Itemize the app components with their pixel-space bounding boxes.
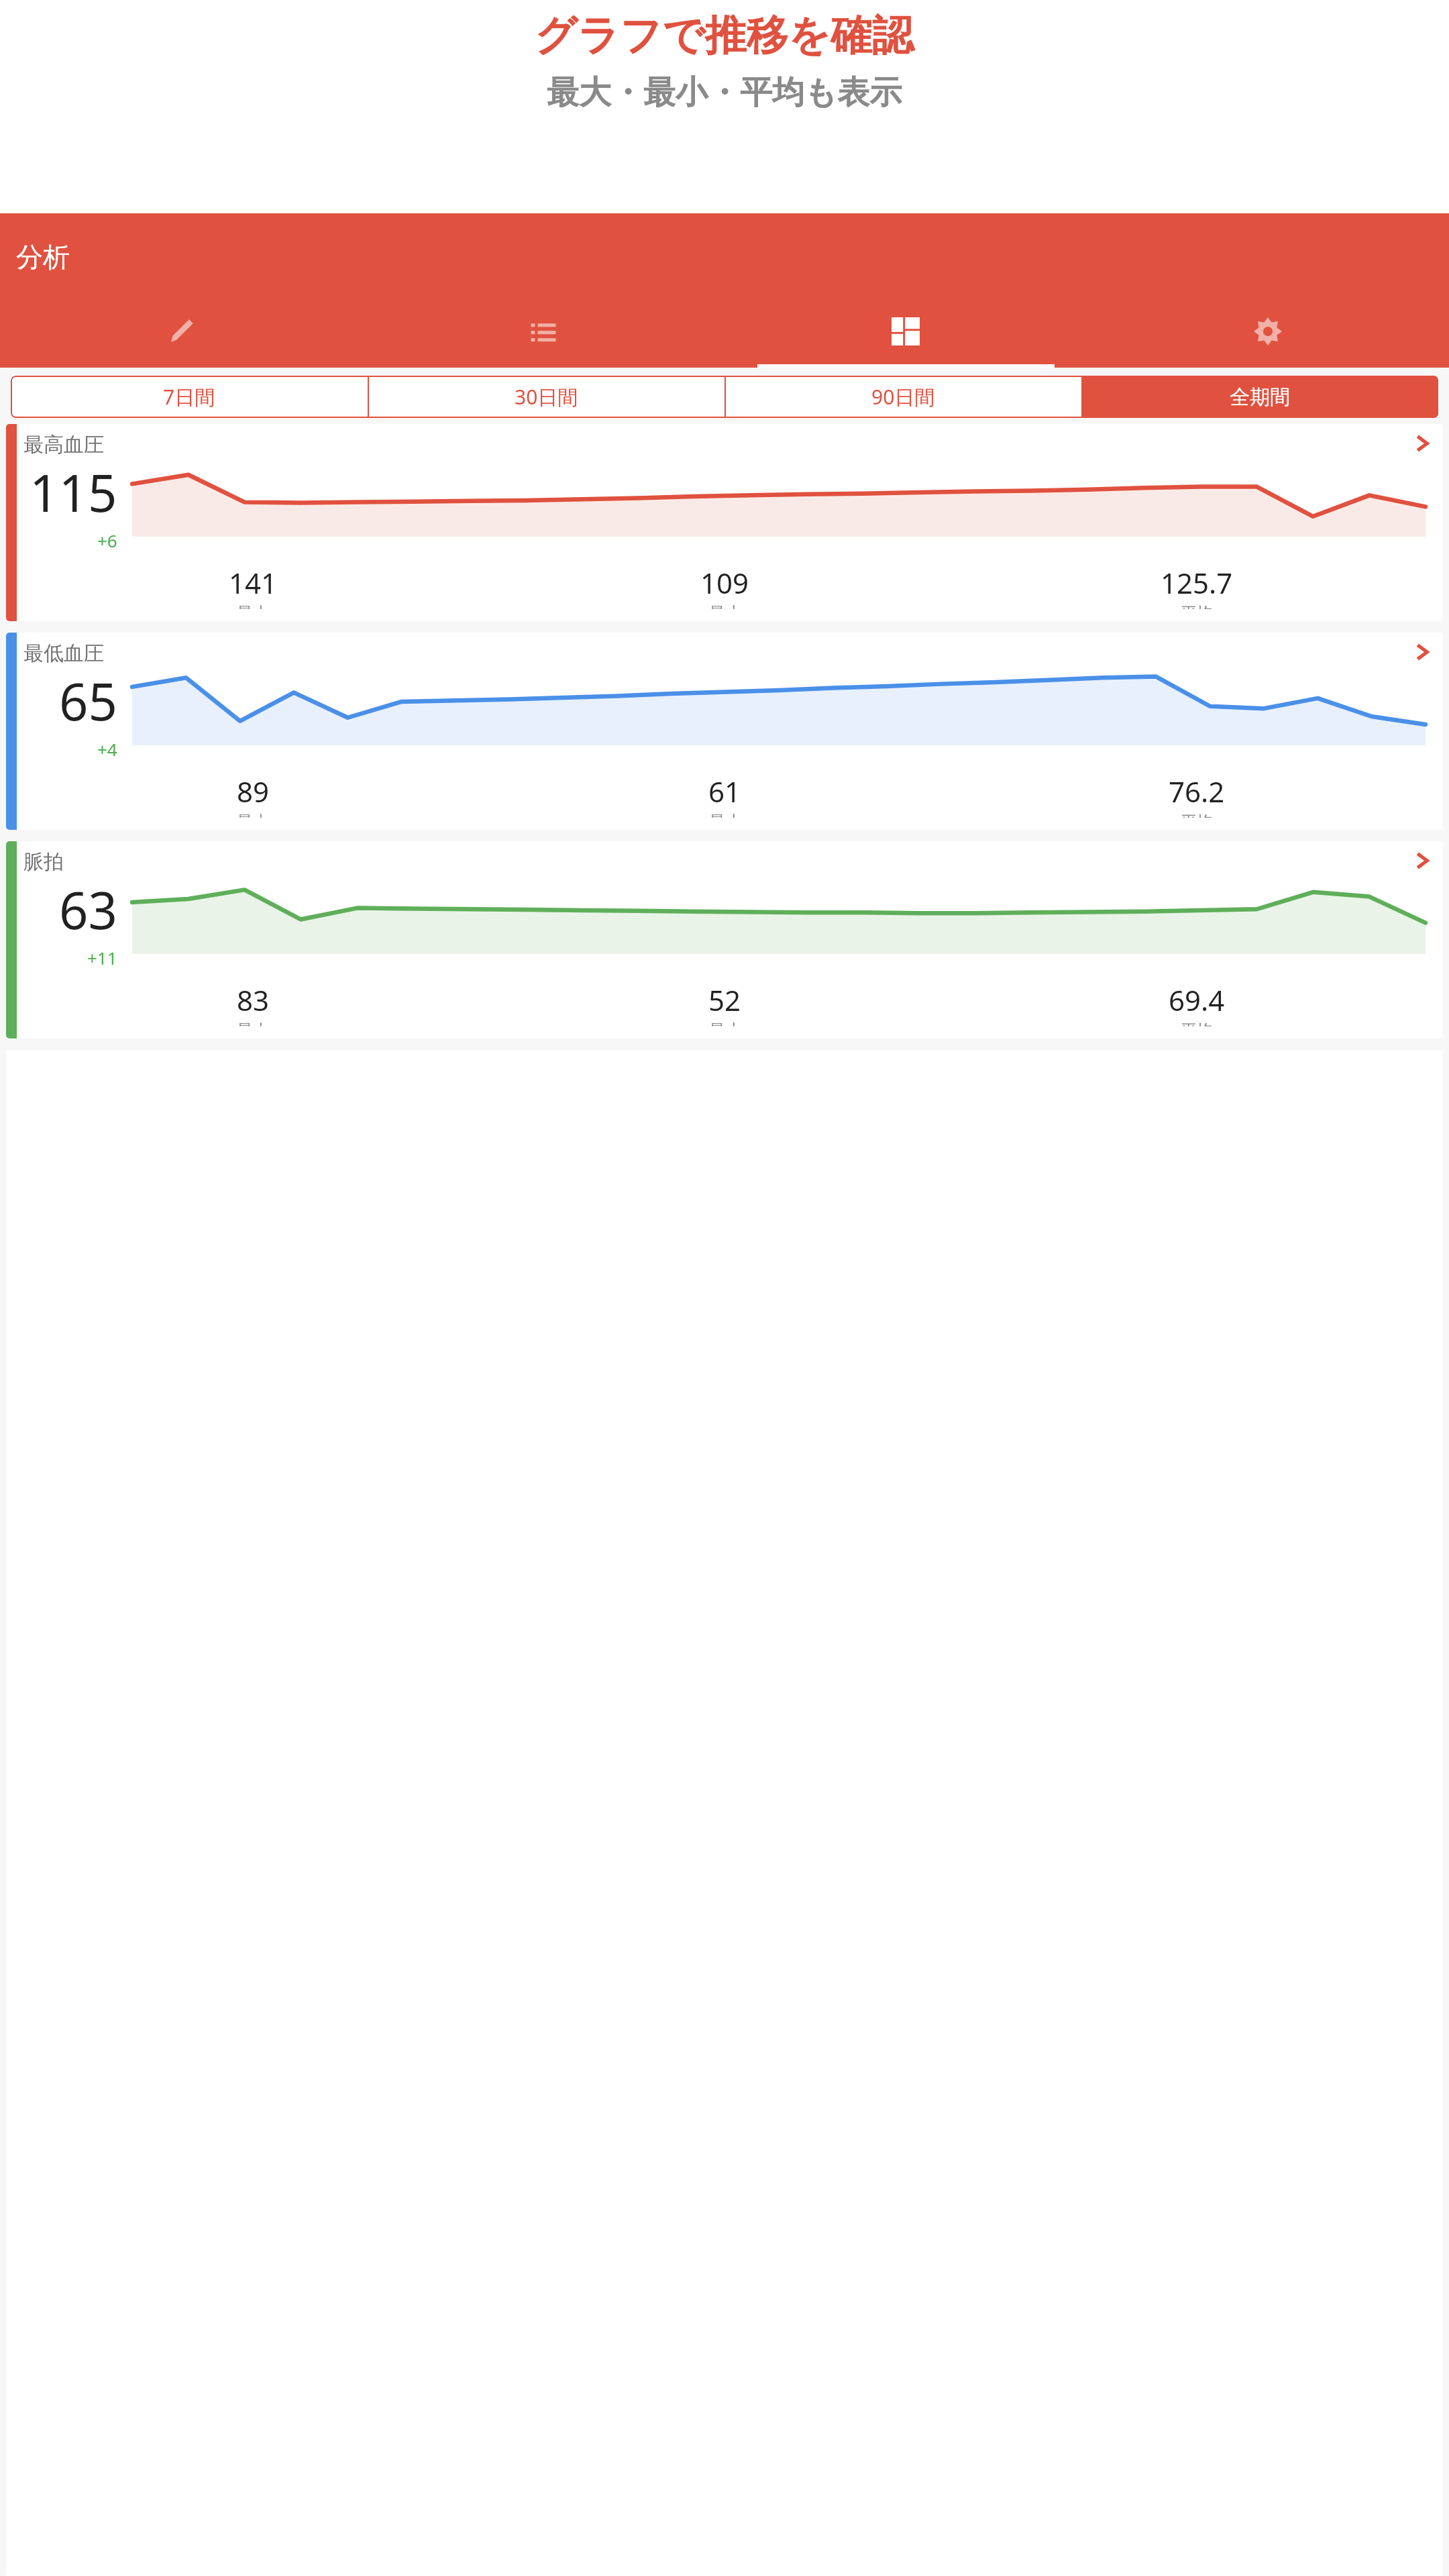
staticText: 最小 [709, 603, 741, 609]
staticText: 分析 [16, 240, 70, 274]
staticText: 109 [700, 563, 749, 602]
staticText: 61 [708, 772, 741, 810]
staticText: 76.2 [1169, 772, 1225, 810]
staticText: 最小 [709, 812, 741, 818]
staticText: +4 [97, 737, 117, 761]
staticText: 脈拍 [23, 849, 64, 875]
staticText: 69.4 [1169, 981, 1225, 1019]
other: 詳細 [1411, 432, 1434, 455]
other: 詳細 [1411, 849, 1434, 872]
button[interactable]: List [362, 301, 724, 368]
button[interactable]: 90日間 [724, 376, 1081, 418]
staticText: 63 [59, 875, 117, 945]
staticText: グラフで推移を確認 [535, 9, 914, 62]
staticText: 141 [229, 563, 278, 602]
button[interactable]: 最高血圧 [6, 424, 1443, 621]
staticText: 125.7 [1161, 563, 1233, 602]
staticText: 最大 [237, 603, 269, 609]
button[interactable]: Edit [0, 301, 362, 368]
staticText: 全期間 [1230, 384, 1290, 410]
staticText: 65 [59, 666, 117, 736]
button[interactable]: 全期間 [1081, 376, 1438, 418]
staticText: 最大・最小・平均も表示 [547, 72, 902, 113]
staticText: 30日間 [515, 383, 578, 411]
staticText: 52 [708, 981, 741, 1019]
staticText: 平均 [1181, 1020, 1213, 1026]
staticText: 最小 [709, 1020, 741, 1026]
staticText: 115 [30, 458, 117, 527]
button[interactable]: Dashboard [724, 301, 1087, 368]
staticText: 最大 [237, 1020, 269, 1026]
staticText: 最高血圧 [23, 432, 104, 458]
staticText: 90日間 [871, 383, 935, 411]
staticText: 83 [237, 981, 270, 1019]
staticText: 平均 [1181, 603, 1213, 609]
button[interactable]: 30日間 [368, 376, 724, 418]
button[interactable]: 7日間 [11, 376, 368, 418]
staticText: 7日間 [163, 383, 215, 411]
other: 詳細 [1411, 641, 1434, 663]
button[interactable]: Settings [1087, 301, 1449, 368]
staticText: 平均 [1181, 812, 1213, 818]
staticText: 最低血圧 [23, 641, 104, 666]
staticText: 89 [237, 772, 270, 810]
staticText: +11 [87, 946, 117, 969]
staticText: +6 [97, 529, 117, 552]
staticText: 最大 [237, 812, 269, 818]
button[interactable]: 最低血圧 [6, 633, 1443, 830]
button[interactable]: 脈拍 [6, 841, 1443, 1038]
